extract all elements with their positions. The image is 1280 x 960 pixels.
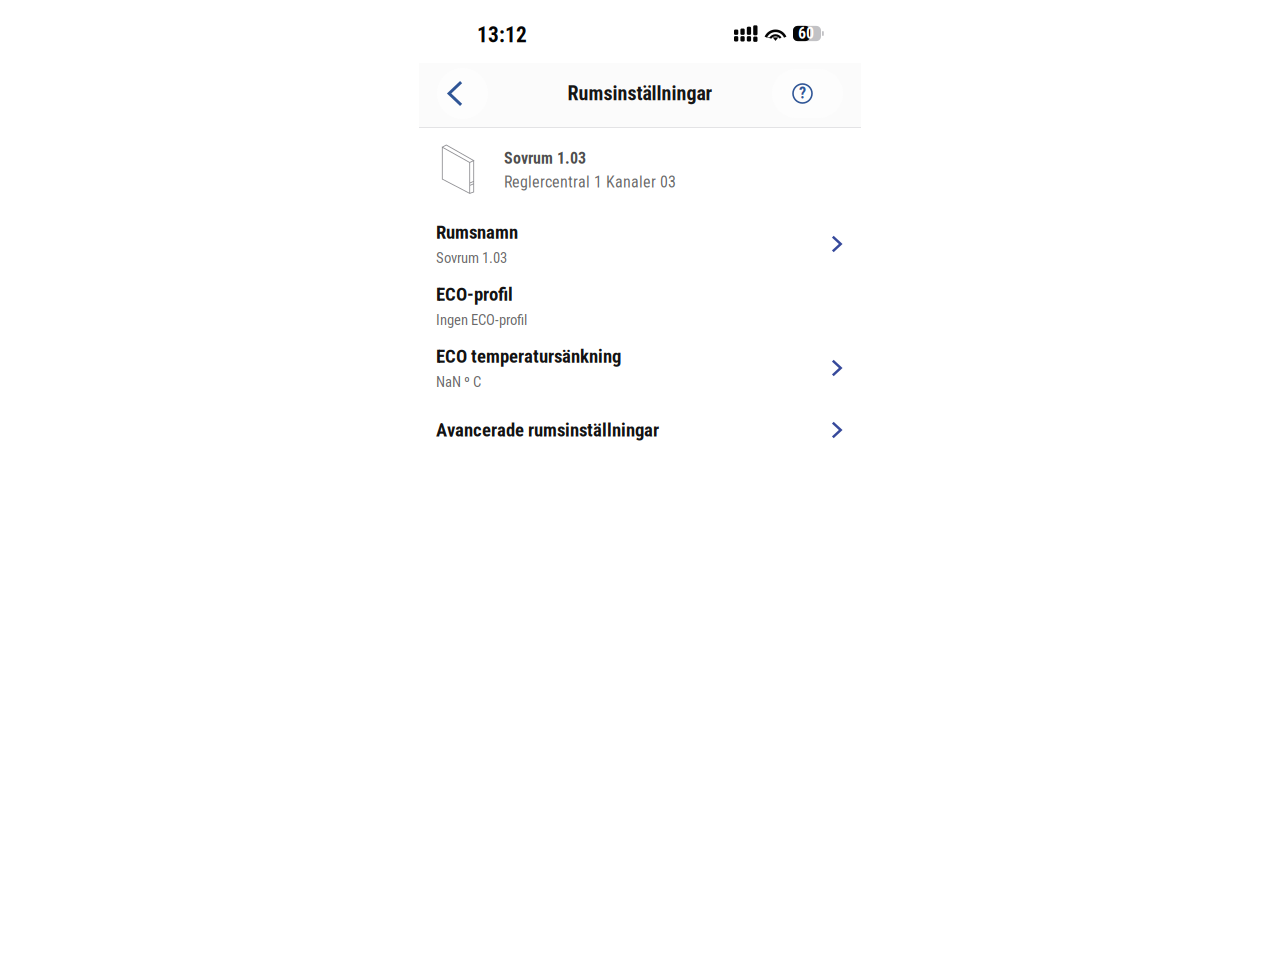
staticText: Avancerade rumsinställningar	[436, 419, 659, 441]
staticText: Sovrum 1.03	[436, 249, 507, 266]
button[interactable]: ECO-profil	[419, 275, 861, 337]
staticText: 60	[798, 24, 814, 43]
staticText: ECO-profil	[436, 283, 513, 305]
staticText: NaN º C	[436, 373, 481, 390]
staticText: Ingen ECO-profil	[436, 311, 527, 328]
staticText: Rumsinställningar	[567, 82, 712, 105]
button[interactable]: ECO temperatursänkning	[419, 337, 861, 399]
staticText: Sovrum 1.03	[504, 149, 586, 168]
staticText: Reglercentral 1 Kanaler 03	[504, 173, 676, 192]
button[interactable]: Back	[437, 68, 488, 119]
staticText: 13:12	[477, 22, 527, 47]
staticText: ECO temperatursänkning	[436, 345, 621, 367]
staticText: ?	[799, 84, 806, 102]
staticText: Rumsnamn	[436, 221, 518, 243]
button[interactable]: Help	[772, 69, 843, 118]
button[interactable]: Avancerade rumsinställningar	[419, 399, 861, 461]
button[interactable]: Rumsnamn	[419, 213, 861, 275]
